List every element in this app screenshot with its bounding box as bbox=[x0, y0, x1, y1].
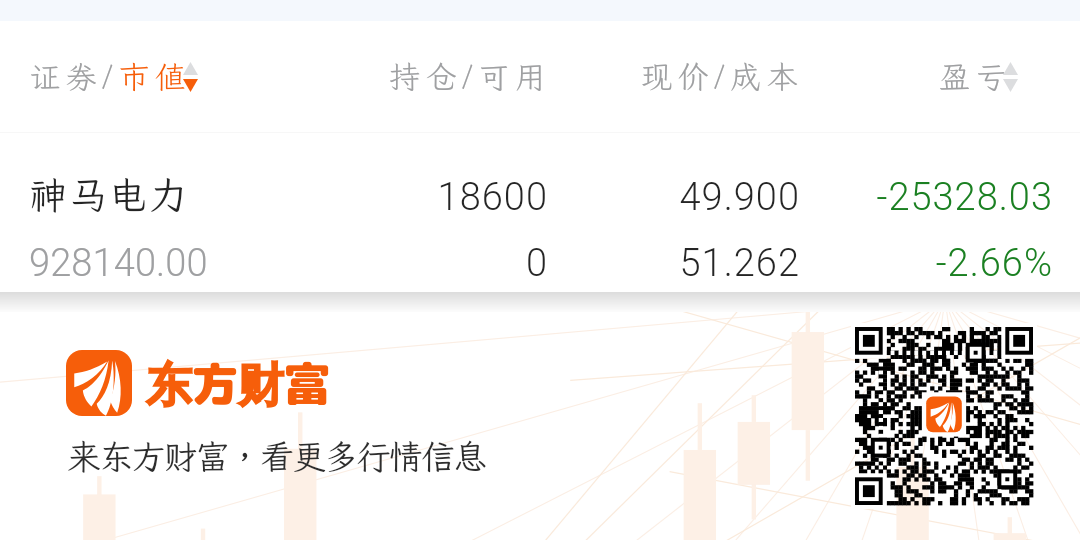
staticText: 51.262 bbox=[500, 241, 800, 286]
staticText: 49.900 bbox=[500, 175, 800, 220]
button[interactable]: 盈亏 bbox=[830, 21, 1080, 132]
staticText: 东方财富 bbox=[146, 352, 330, 416]
button[interactable]: 神马电力 bbox=[0, 133, 1080, 292]
staticText: 盈亏 bbox=[939, 56, 1012, 97]
button[interactable]: 持仓/可用 bbox=[320, 21, 560, 132]
button[interactable]: 东方财富 bbox=[66, 350, 326, 416]
staticText: -25328.03 bbox=[753, 175, 1053, 220]
staticText: 神马电力 bbox=[29, 170, 190, 220]
button[interactable]: 证券/市值 bbox=[0, 21, 300, 132]
other: Sort bbox=[1003, 62, 1018, 92]
staticText: 来东方财富，看更多行情信息 bbox=[67, 434, 486, 479]
other: Sort bbox=[183, 62, 198, 92]
staticText: 18600 bbox=[248, 175, 548, 220]
staticText: 证券/市值 bbox=[29, 56, 192, 97]
staticText: 持仓/可用 bbox=[389, 56, 552, 97]
staticText: 928140.00 bbox=[29, 241, 208, 286]
staticText: 0 bbox=[248, 241, 548, 286]
staticText: 现价/成本 bbox=[641, 56, 804, 97]
button[interactable]: 现价/成本 bbox=[572, 21, 812, 132]
button[interactable]: Scan QR code to open 东方财富 bbox=[855, 327, 1033, 505]
staticText: -2.66% bbox=[753, 241, 1053, 286]
